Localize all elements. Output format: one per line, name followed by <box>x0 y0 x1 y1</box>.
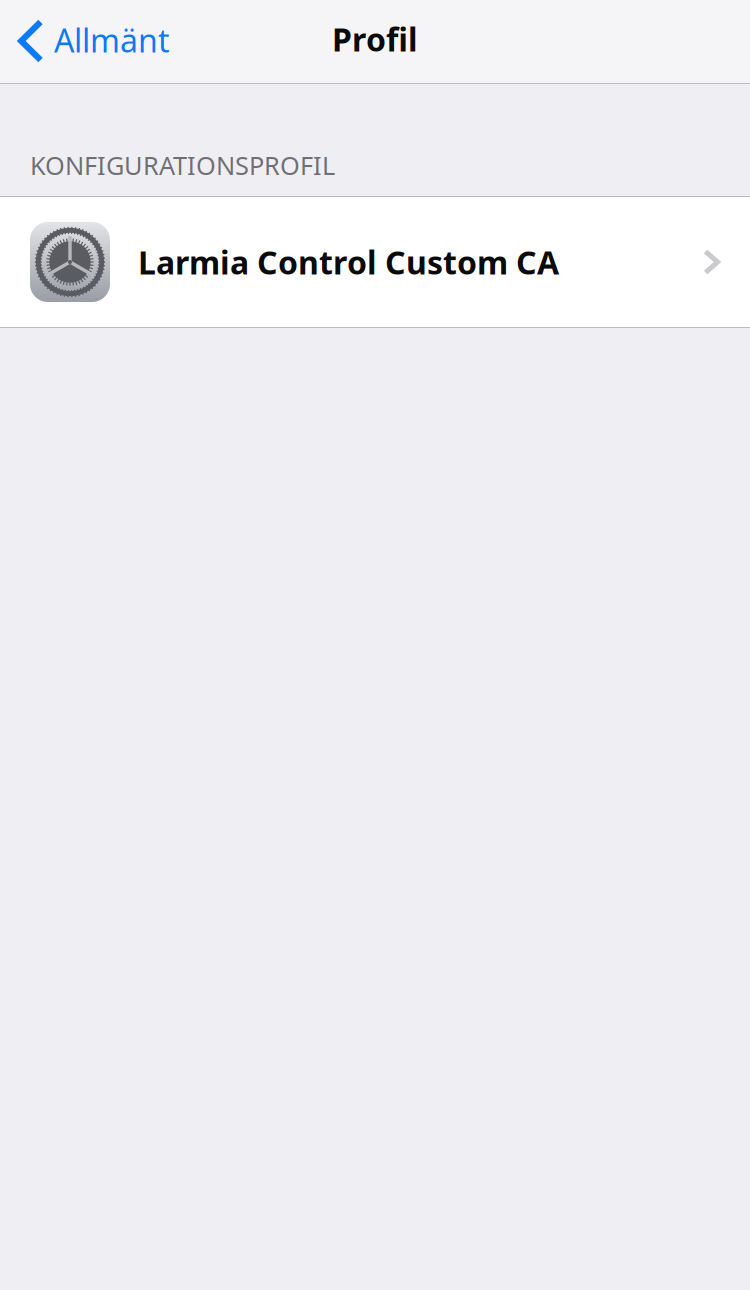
staticText: KONFIGURATIONSPROFIL <box>30 148 335 182</box>
staticText: Profil <box>332 18 418 60</box>
staticText: Allmänt <box>54 19 170 61</box>
button[interactable]: Larmia Control Custom CA <box>0 196 750 328</box>
button[interactable]: Back to Allmänt <box>0 0 184 84</box>
staticText: Larmia Control Custom CA <box>138 241 559 283</box>
